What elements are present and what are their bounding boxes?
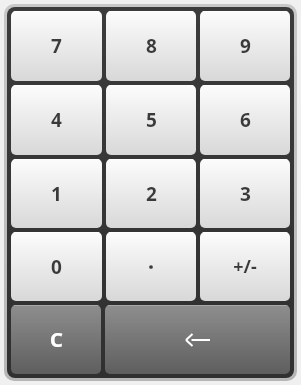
button[interactable]: Decimal point bbox=[106, 232, 196, 301]
button[interactable]: 5 bbox=[106, 85, 196, 155]
button[interactable]: 7 bbox=[11, 11, 102, 81]
button[interactable]: 3 bbox=[200, 159, 290, 228]
staticText: 9 bbox=[240, 33, 251, 59]
staticText: +/- bbox=[233, 254, 257, 279]
staticText: 4 bbox=[51, 107, 62, 133]
button[interactable]: 2 bbox=[106, 159, 196, 228]
staticText: 6 bbox=[240, 107, 251, 133]
staticText: 2 bbox=[146, 181, 157, 207]
staticText: 1 bbox=[51, 181, 62, 207]
button[interactable]: 9 bbox=[200, 11, 290, 81]
staticText: 5 bbox=[146, 107, 157, 133]
button[interactable]: 1 bbox=[11, 159, 102, 228]
button[interactable]: 0 bbox=[11, 232, 102, 301]
button[interactable]: C bbox=[11, 305, 101, 374]
button[interactable]: +/- bbox=[200, 232, 290, 301]
button[interactable]: 8 bbox=[106, 11, 196, 81]
staticText: 0 bbox=[51, 254, 62, 280]
staticText: 7 bbox=[51, 33, 62, 59]
staticText: 3 bbox=[240, 181, 251, 207]
button[interactable]: 4 bbox=[11, 85, 102, 155]
button[interactable]: Backspace bbox=[105, 305, 290, 374]
button[interactable]: 6 bbox=[200, 85, 290, 155]
staticText: 8 bbox=[146, 33, 157, 59]
staticText: C bbox=[50, 326, 63, 353]
